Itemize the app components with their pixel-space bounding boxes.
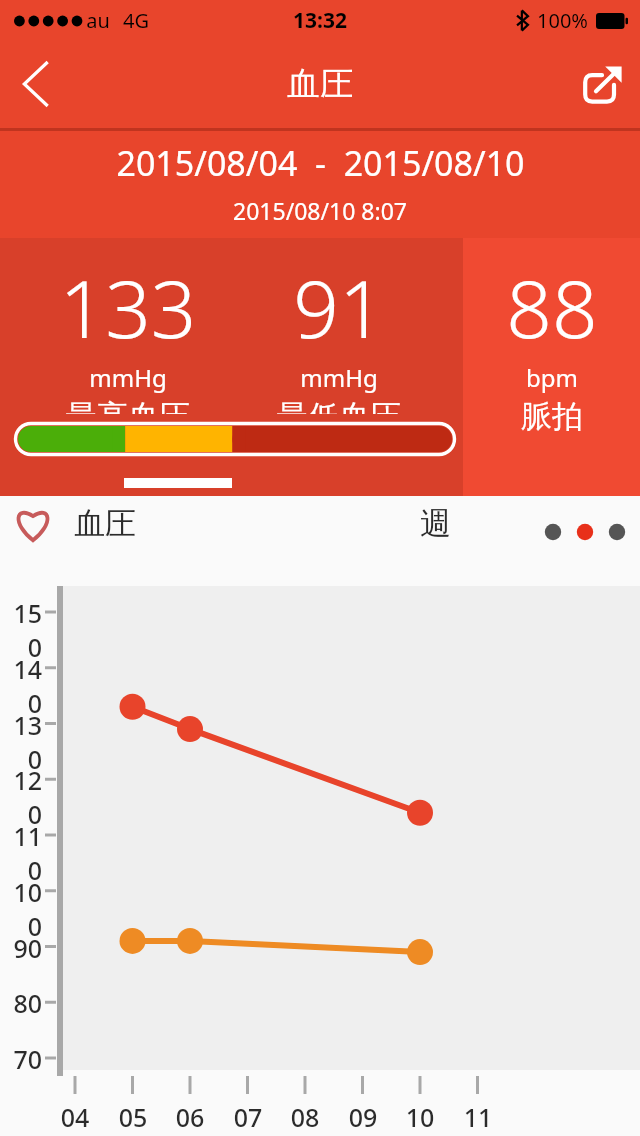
button[interactable]: Back xyxy=(0,44,72,124)
staticText: 100 xyxy=(0,875,42,943)
staticText: 脈拍 xyxy=(521,397,583,436)
staticText: 70 xyxy=(0,1042,42,1076)
staticText: 91 xyxy=(293,252,385,361)
staticText: 140 xyxy=(0,652,42,720)
staticText: 11 xyxy=(452,1100,504,1134)
staticText: 120 xyxy=(0,763,42,831)
staticText: 4G xyxy=(123,7,149,34)
staticText: 10 xyxy=(394,1100,446,1134)
staticText: bpm xyxy=(526,361,578,394)
staticText: 血圧 xyxy=(287,63,353,105)
staticText: 100% xyxy=(537,7,588,34)
staticText: 07 xyxy=(222,1100,274,1134)
button[interactable]: Share xyxy=(564,44,640,124)
staticText: 150 xyxy=(0,596,42,664)
staticText: 08 xyxy=(279,1100,331,1134)
button[interactable]: 週 xyxy=(420,504,451,543)
staticText: 最低血圧 xyxy=(277,397,401,414)
staticText: 133 xyxy=(59,252,197,361)
staticText: 110 xyxy=(0,819,42,887)
staticText: 80 xyxy=(0,986,42,1020)
staticText: 週 xyxy=(420,504,451,543)
staticText: 130 xyxy=(0,708,42,776)
staticText: 05 xyxy=(107,1100,159,1134)
staticText: 2015/08/04 - 2015/08/10 xyxy=(116,140,525,186)
staticText: 09 xyxy=(337,1100,389,1134)
staticText: mmHg xyxy=(300,361,378,394)
staticText: 最高血圧 xyxy=(66,397,190,414)
staticText: 血圧 xyxy=(74,504,136,543)
staticText: mmHg xyxy=(89,361,167,394)
staticText: 13:32 xyxy=(293,6,347,35)
staticText: 90 xyxy=(0,931,42,965)
staticText: 88 xyxy=(506,252,598,361)
staticText: 04 xyxy=(49,1100,101,1134)
staticText: 06 xyxy=(164,1100,216,1134)
staticText: 2015/08/10 8:07 xyxy=(233,195,407,226)
button[interactable]: 血圧 xyxy=(12,504,136,543)
staticText: au xyxy=(86,7,110,34)
